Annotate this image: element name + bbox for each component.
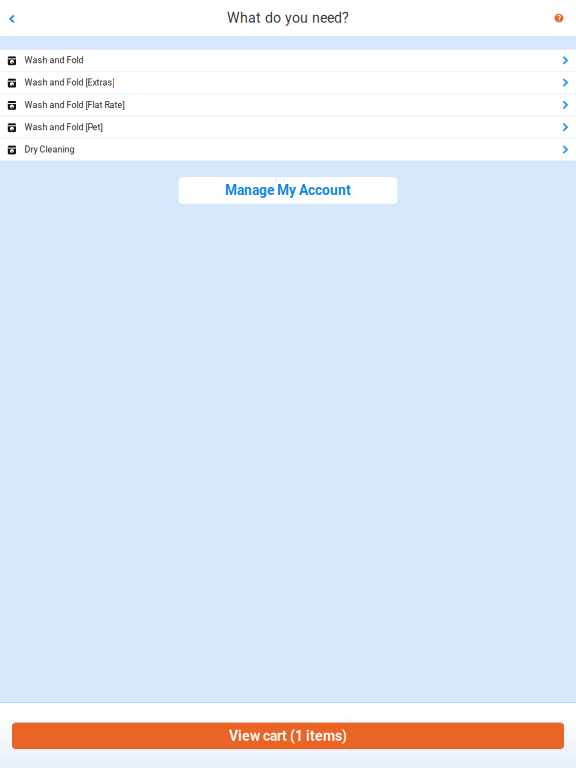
staticText: Wash and Fold xyxy=(24,55,83,65)
button[interactable]: Help xyxy=(548,0,576,36)
button[interactable]: Wash and Fold [Extras] xyxy=(0,72,576,94)
staticText: What do you need? xyxy=(227,10,349,26)
button[interactable]: View cart (1 items) xyxy=(0,723,576,749)
staticText: View cart (1 items) xyxy=(229,728,347,744)
staticText: Wash and Fold [Pet] xyxy=(24,122,102,132)
staticText: Wash and Fold [Extras] xyxy=(24,77,114,88)
button[interactable]: Wash and Fold [Flat Rate] xyxy=(0,94,576,116)
button[interactable]: Wash and Fold xyxy=(0,50,576,72)
button[interactable]: Dry Cleaning xyxy=(0,139,576,161)
button[interactable]: Back xyxy=(0,0,22,36)
staticText: Dry Cleaning xyxy=(24,144,74,155)
staticText: Wash and Fold [Flat Rate] xyxy=(24,100,124,110)
button[interactable]: Wash and Fold [Pet] xyxy=(0,116,576,139)
staticText: Manage My Account xyxy=(225,182,351,198)
button[interactable]: Manage My Account xyxy=(179,177,397,204)
